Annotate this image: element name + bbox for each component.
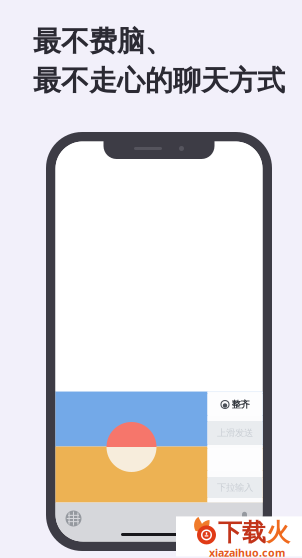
button[interactable]: Switch keyboard xyxy=(60,506,86,530)
button[interactable]: 整齐 xyxy=(207,393,262,416)
staticText: 上滑发送 xyxy=(217,427,253,439)
staticText: xiazaihuo.com xyxy=(209,545,285,558)
staticText: 整齐 xyxy=(231,399,249,410)
staticText: 下拉输入 xyxy=(217,482,253,493)
button[interactable]: Dictate xyxy=(231,506,257,530)
staticText: 最不走心的聊天方式 xyxy=(33,63,285,98)
staticText: 最不费脑、 xyxy=(33,24,173,58)
button[interactable]: 下拉输入 xyxy=(207,477,262,498)
button[interactable]: 上滑发送 xyxy=(207,421,262,445)
staticText: 下载 xyxy=(218,518,266,547)
staticText: 火 xyxy=(266,518,290,547)
